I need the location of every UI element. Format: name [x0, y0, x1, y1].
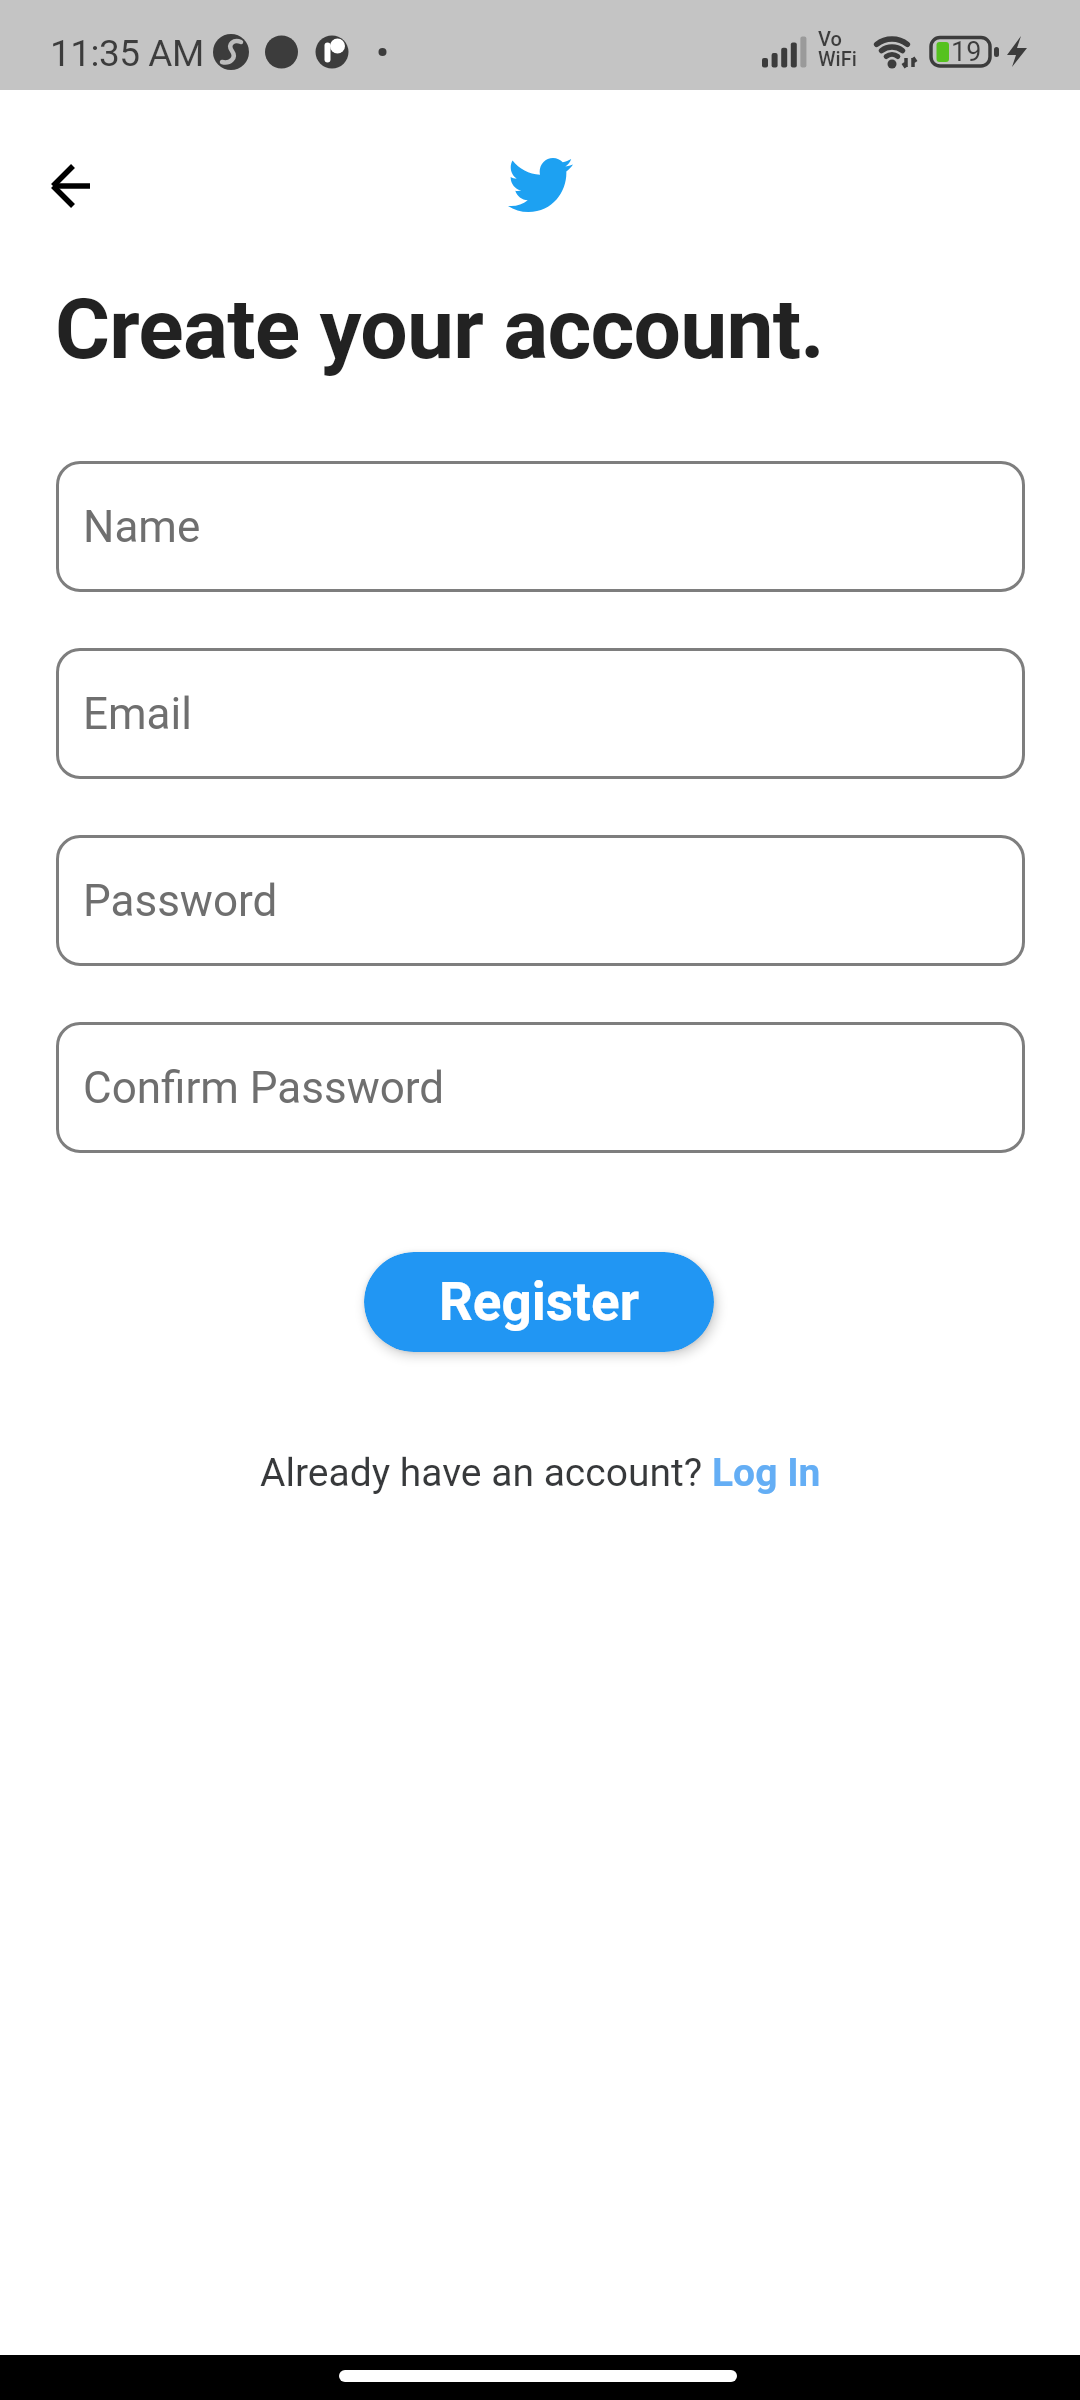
- staticText: 19: [951, 36, 982, 68]
- staticText: Already have an account?: [260, 1450, 712, 1496]
- button[interactable]: Confirm Password: [56, 1022, 1025, 1153]
- button[interactable]: Register: [364, 1252, 714, 1352]
- button[interactable]: Email: [56, 648, 1025, 779]
- staticText: Name: [83, 501, 201, 553]
- staticText: Vo WiFi: [818, 27, 857, 71]
- staticText: Create your account.: [55, 280, 824, 378]
- button[interactable]: Password: [56, 835, 1025, 966]
- staticText: Confirm Password: [83, 1062, 445, 1114]
- staticText: 11:35 AM: [50, 32, 204, 75]
- button[interactable]: [41, 156, 101, 216]
- staticText: Email: [83, 688, 192, 740]
- button[interactable]: Name: [56, 461, 1025, 592]
- staticText: Register: [439, 1271, 639, 1333]
- staticText: Password: [83, 875, 278, 927]
- button[interactable]: Log In: [712, 1450, 821, 1496]
